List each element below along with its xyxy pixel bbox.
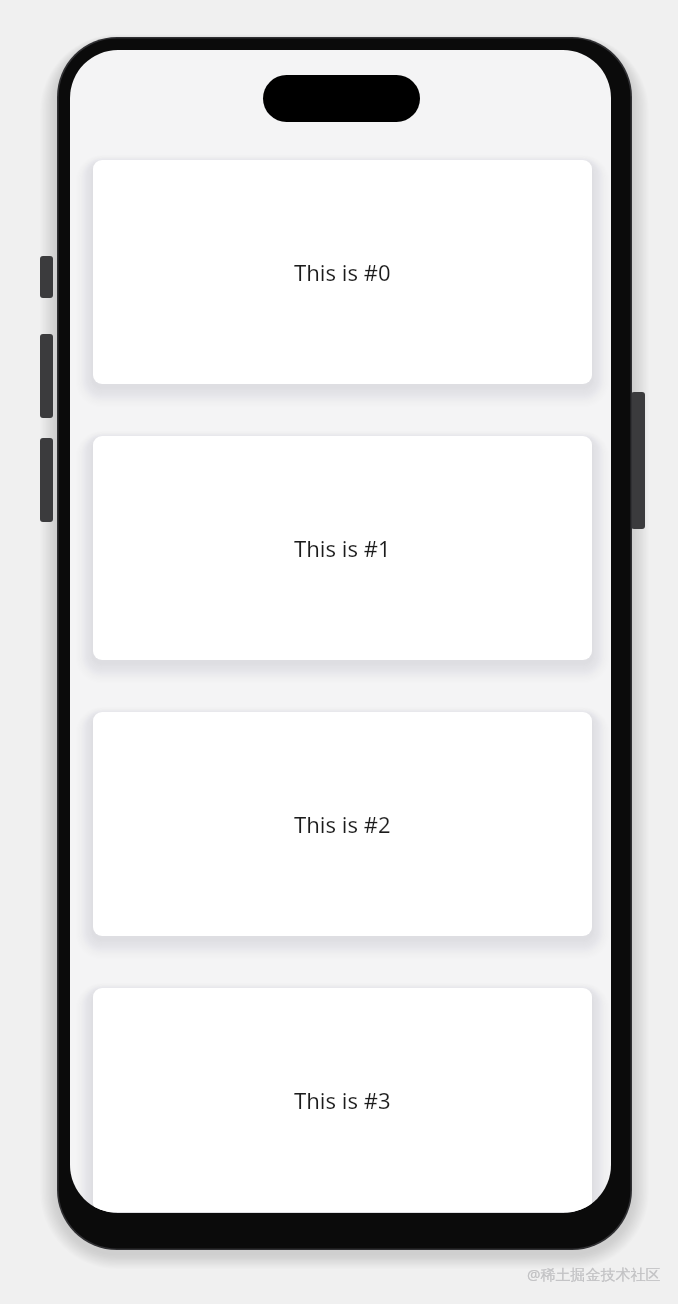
button[interactable]: This is #2 bbox=[93, 712, 592, 936]
button[interactable]: This is #0 bbox=[93, 160, 592, 384]
button[interactable]: This is #3 bbox=[93, 988, 592, 1212]
button[interactable]: Volume down bbox=[40, 438, 53, 522]
button[interactable]: Volume up bbox=[40, 334, 53, 418]
button[interactable]: This is #1 bbox=[93, 436, 592, 660]
button[interactable]: Silent switch bbox=[40, 256, 53, 298]
button[interactable]: Power bbox=[631, 392, 645, 529]
